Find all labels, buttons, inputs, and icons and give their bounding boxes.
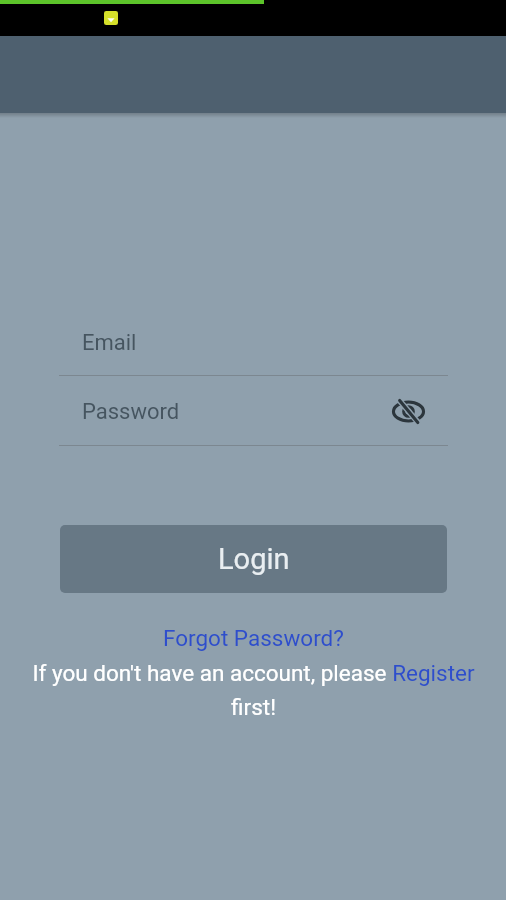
staticText: Password [82,399,180,425]
button[interactable]: Password [60,392,448,432]
button[interactable]: Forgot Password? [163,625,344,651]
button[interactable]: Toggle password visibility [388,391,428,431]
button[interactable]: Login [60,525,447,593]
button[interactable]: Email [60,323,448,363]
staticText: Forgot Password? [163,625,344,651]
staticText: If you don't have an account, please Reg… [32,660,475,686]
staticText: first! [231,694,276,720]
staticText: Login [218,542,290,576]
staticText: Email [82,330,137,356]
other: Notification [104,11,118,25]
